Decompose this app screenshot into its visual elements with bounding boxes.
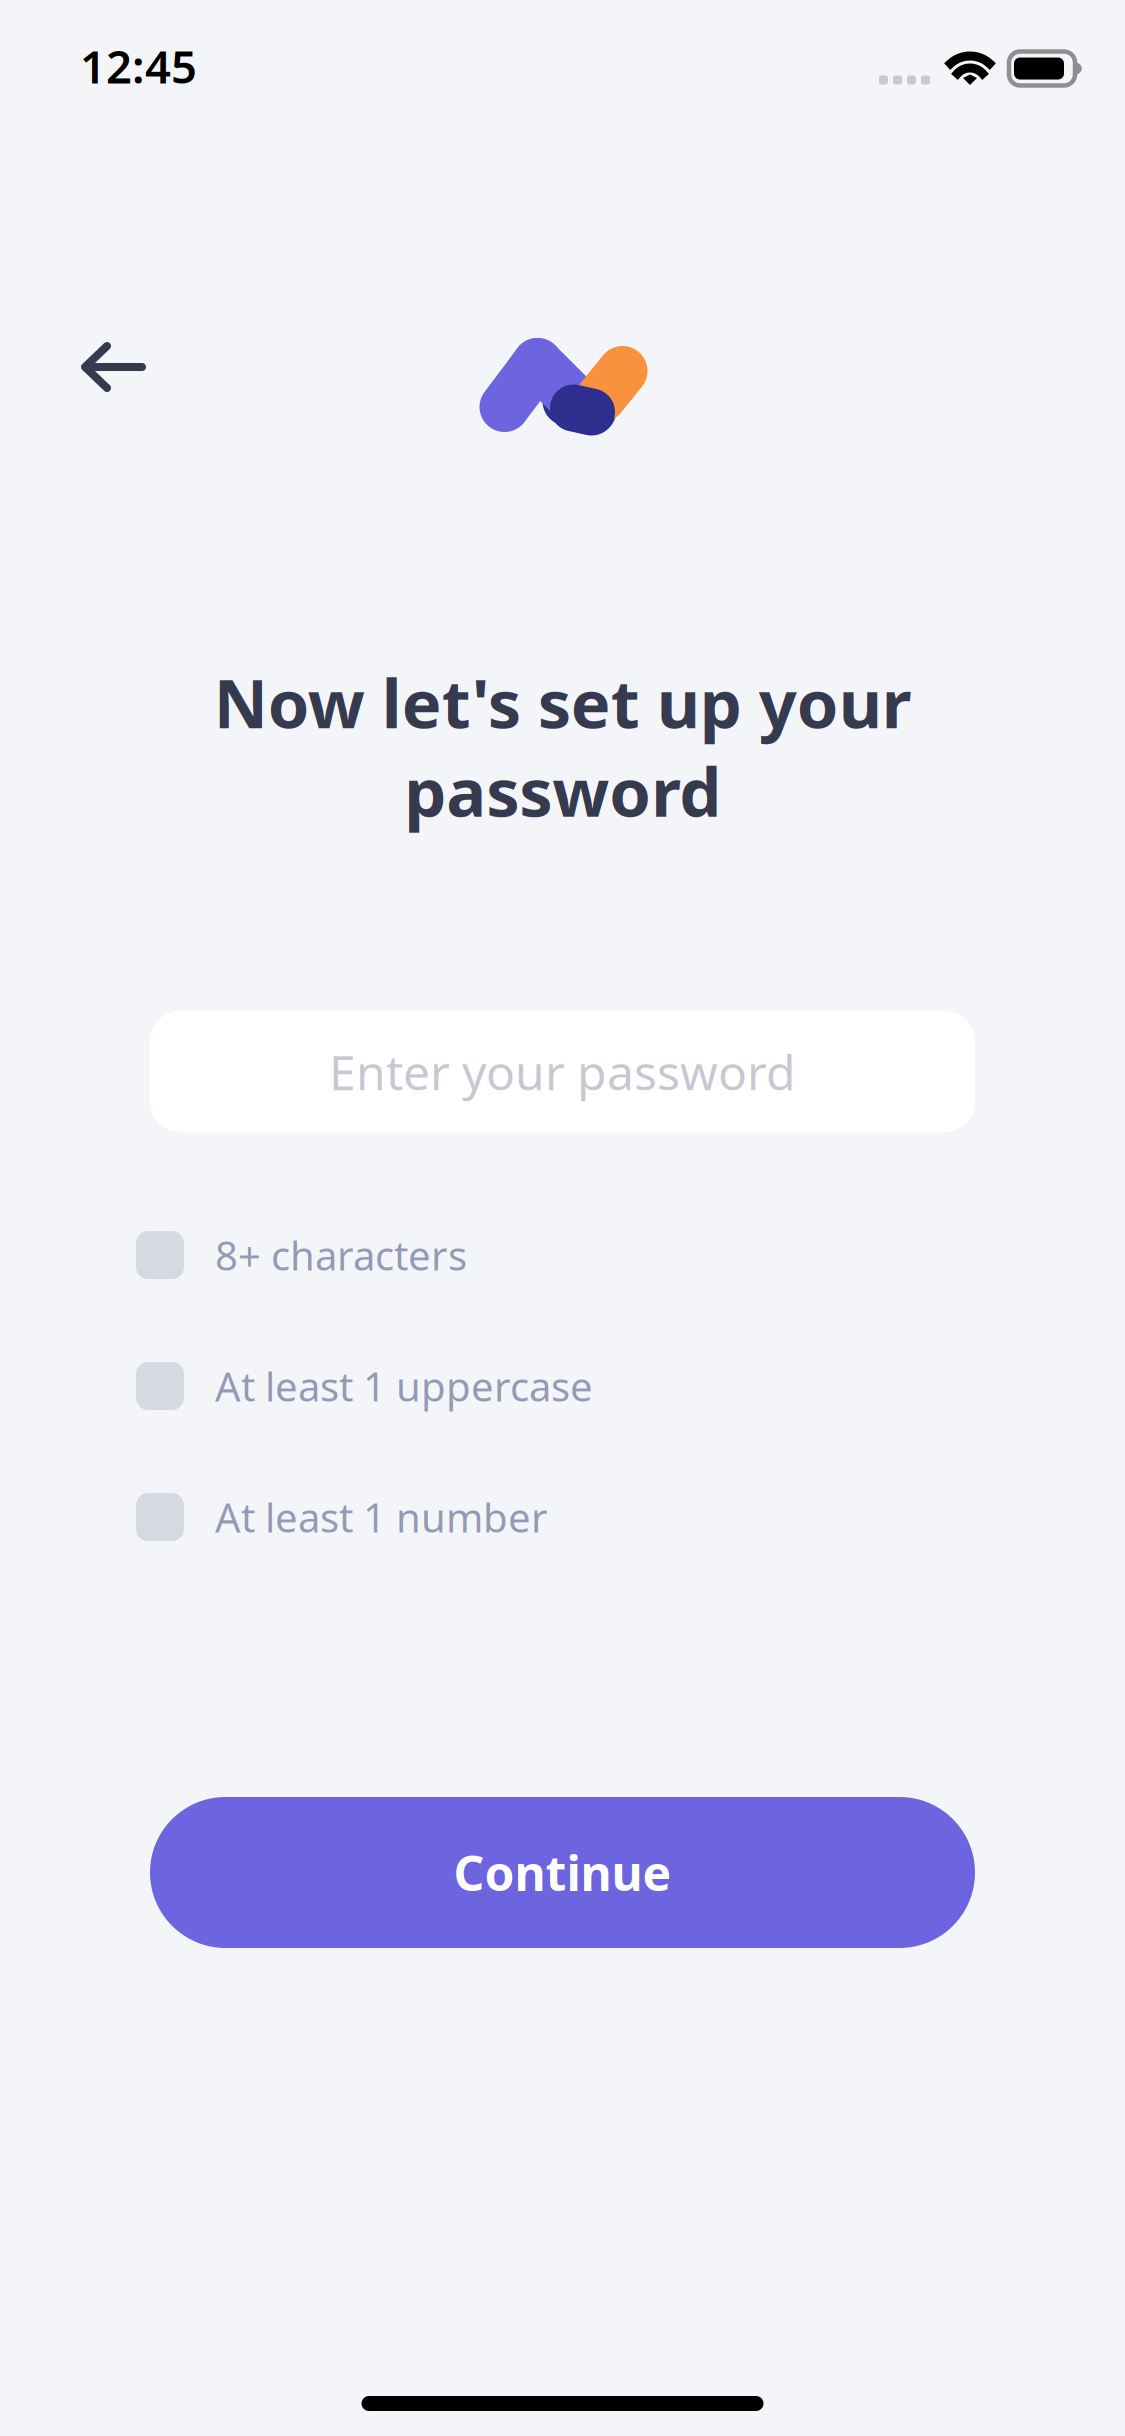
staticText: Now let's set up your password <box>213 658 911 835</box>
staticText: At least 1 uppercase <box>215 1359 593 1413</box>
staticText: At least 1 number <box>215 1490 548 1544</box>
staticText: 8+ characters <box>215 1228 467 1282</box>
staticText: Enter your password <box>329 1040 796 1103</box>
button[interactable]: Back <box>0 337 190 439</box>
staticText: 12:45 <box>80 36 197 96</box>
staticText: Continue <box>453 1841 671 1904</box>
button[interactable]: Continue <box>150 1797 975 1948</box>
